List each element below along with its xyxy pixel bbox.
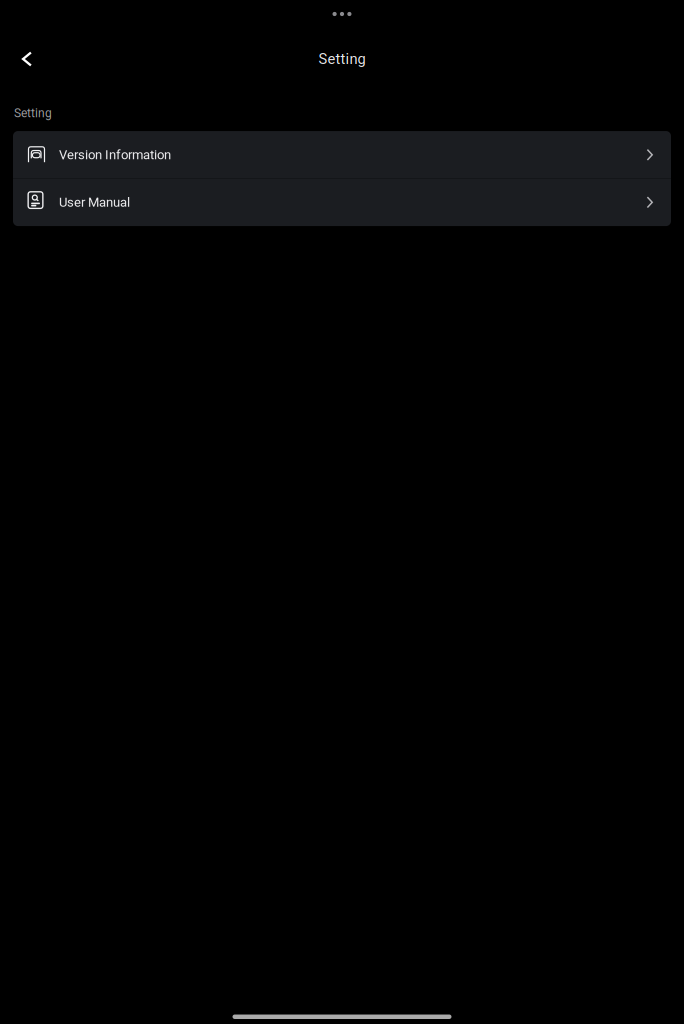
staticText: Version Information: [59, 147, 171, 162]
staticText: Setting: [318, 50, 365, 68]
button[interactable]: User Manual: [13, 179, 671, 226]
staticText: Setting: [14, 106, 52, 120]
button[interactable]: Back: [5, 37, 49, 81]
staticText: User Manual: [59, 195, 130, 210]
button[interactable]: Version Information: [13, 131, 671, 179]
